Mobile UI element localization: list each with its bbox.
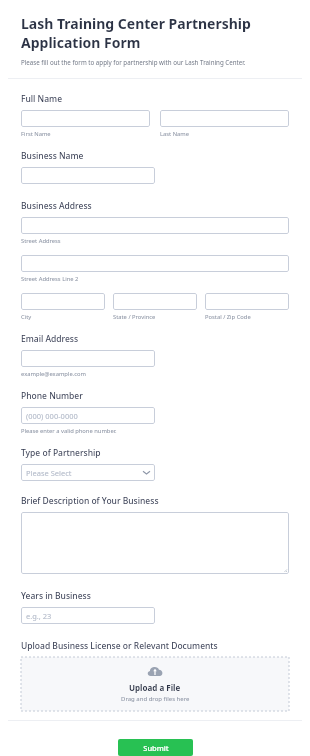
button[interactable]: Submit [118,739,193,756]
button[interactable]: Please Select [21,464,155,481]
staticText: Please Select [26,468,72,478]
button[interactable]: Upload a File [21,657,289,711]
staticText: e.g., 23 [26,611,52,621]
staticText: Phone Number [21,390,83,402]
staticText: Please enter a valid phone number. [21,427,117,435]
staticText: Lash Training Center Partnership Applica… [21,14,251,52]
button[interactable] [21,217,289,234]
staticText: Business Name [21,150,84,162]
staticText: Drag and drop files here [121,695,190,703]
staticText: Postal / Zip Code [205,313,251,321]
staticText: Years in Business [21,590,91,602]
button[interactable]: e.g., 23 [21,607,155,624]
button[interactable] [21,255,289,272]
staticText: Street Address [21,237,61,245]
staticText: City [21,313,32,321]
staticText: (000) 000-0000 [26,411,78,421]
staticText: Business Address [21,200,92,212]
button[interactable] [160,110,289,127]
button[interactable] [21,167,155,184]
staticText: Last Name [160,130,190,138]
staticText: Full Name [21,93,63,105]
button[interactable]: (000) 000-0000 [21,407,155,424]
button[interactable] [113,293,197,310]
staticText: Brief Description of Your Business [21,495,159,507]
staticText: example@example.com [21,370,86,378]
staticText: Street Address Line 2 [21,275,79,283]
staticText: Type of Partnership [21,447,101,459]
staticText: Submit [143,743,169,753]
button[interactable] [21,512,289,574]
button[interactable] [21,350,155,367]
staticText: Please fill out the form to apply for pa… [21,58,246,66]
staticText: Upload a File [129,682,181,693]
button[interactable] [21,110,150,127]
staticText: Upload Business License or Relevant Docu… [21,640,218,652]
staticText: State / Province [113,313,156,321]
staticText: Email Address [21,333,79,345]
button[interactable] [21,293,105,310]
staticText: First Name [21,130,51,138]
button[interactable] [205,293,289,310]
